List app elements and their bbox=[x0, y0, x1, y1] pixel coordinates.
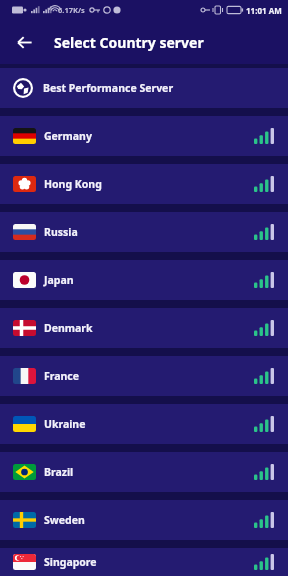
staticText: 6.17K/s bbox=[58, 5, 85, 15]
staticText: Sweden bbox=[44, 513, 85, 527]
button[interactable]: Back bbox=[8, 26, 40, 58]
staticText: Russia bbox=[44, 225, 78, 239]
staticText: Hong Kong bbox=[44, 177, 102, 191]
staticText: Singapore bbox=[44, 555, 97, 569]
staticText: Japan bbox=[44, 273, 74, 287]
button[interactable]: Best Performance Server bbox=[0, 68, 288, 108]
button[interactable]: Germany bbox=[0, 116, 288, 156]
button[interactable]: Hong Kong bbox=[0, 164, 288, 204]
button[interactable]: Singapore bbox=[0, 548, 288, 576]
staticText: Select Country server bbox=[54, 33, 204, 52]
button[interactable]: Sweden bbox=[0, 500, 288, 540]
button[interactable]: France bbox=[0, 356, 288, 396]
button[interactable]: Russia bbox=[0, 212, 288, 252]
staticText: Best Performance Server bbox=[43, 81, 174, 95]
staticText: Ukraine bbox=[44, 417, 86, 431]
button[interactable]: Denmark bbox=[0, 308, 288, 348]
staticText: Denmark bbox=[44, 321, 93, 335]
staticText: France bbox=[44, 369, 80, 383]
staticText: 11:01 AM bbox=[246, 5, 282, 16]
button[interactable]: Japan bbox=[0, 260, 288, 300]
staticText: Germany bbox=[44, 129, 92, 143]
button[interactable]: Brazil bbox=[0, 452, 288, 492]
button[interactable]: Ukraine bbox=[0, 404, 288, 444]
staticText: Brazil bbox=[44, 465, 74, 479]
